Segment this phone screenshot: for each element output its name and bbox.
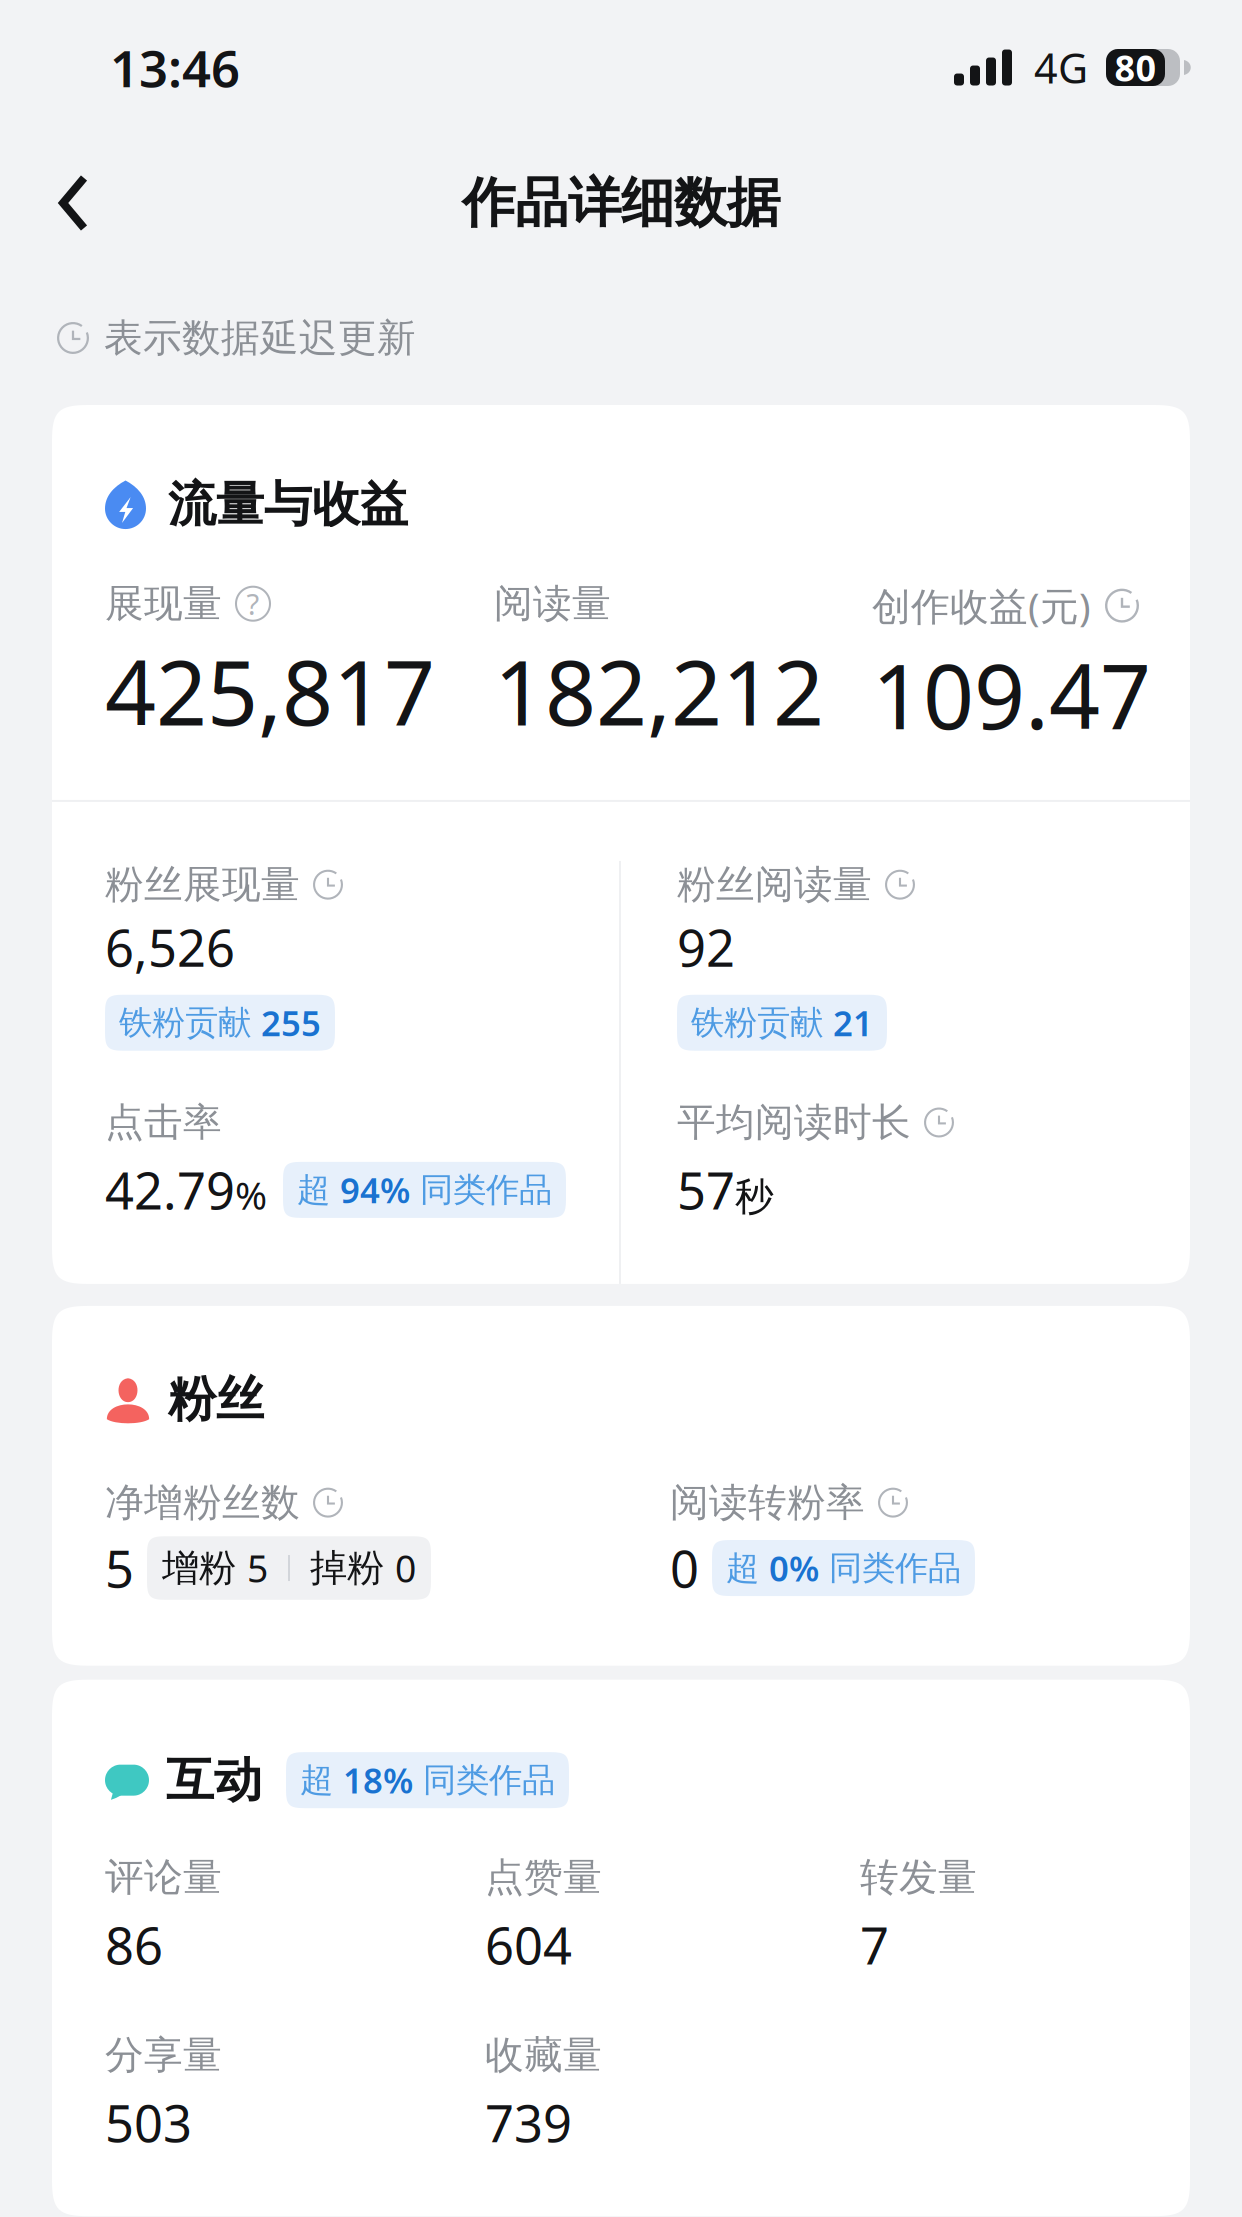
staticText: 创作收益(元) xyxy=(872,580,1091,631)
staticText: 21 xyxy=(833,1000,873,1046)
staticText: 5 xyxy=(247,1543,268,1593)
staticText: 57 xyxy=(677,1156,735,1223)
staticText: 109.47 xyxy=(872,635,1151,754)
staticText: 评论量 xyxy=(105,1854,222,1901)
staticText: 表示数据延迟更新 xyxy=(104,314,416,362)
staticText: 92 xyxy=(677,913,735,981)
staticText: 流量与收益 xyxy=(168,475,408,534)
staticText: 超 xyxy=(300,1760,343,1801)
staticText: % xyxy=(235,1169,267,1220)
staticText: 13:46 xyxy=(110,34,240,101)
staticText: 42.79 xyxy=(105,1156,235,1223)
staticText: 182,212 xyxy=(494,631,824,750)
staticText: 秒 xyxy=(735,1173,774,1220)
staticText: 点赞量 xyxy=(485,1854,602,1901)
staticText: 同类作品 xyxy=(819,1548,961,1588)
staticText: 0% xyxy=(769,1545,819,1591)
staticText: 425,817 xyxy=(105,631,435,750)
staticText: 604 xyxy=(485,1911,572,1978)
staticText: 超 xyxy=(297,1169,340,1210)
staticText: 4G xyxy=(1034,40,1088,95)
staticText: 阅读转粉率 xyxy=(670,1479,865,1526)
staticText: ? xyxy=(246,584,259,623)
staticText: 5 xyxy=(105,1534,134,1602)
staticText: 展现量 xyxy=(105,580,222,627)
staticText: 86 xyxy=(105,1911,163,1978)
staticText: 粉丝展现量 xyxy=(105,861,300,908)
staticText: 503 xyxy=(105,2089,192,2156)
staticText: 收藏量 xyxy=(485,2031,602,2079)
staticText: 点击率 xyxy=(105,1099,222,1146)
button[interactable]: 返回 xyxy=(22,148,126,258)
staticText: 粉丝 xyxy=(168,1370,264,1429)
staticText: 互动 xyxy=(166,1751,262,1810)
staticText: 转发量 xyxy=(860,1854,977,1901)
staticText: 同类作品 xyxy=(413,1760,555,1801)
staticText: 掉粉 xyxy=(310,1545,395,1591)
staticText: 增粉 xyxy=(162,1545,247,1591)
staticText: 铁粉贡献 xyxy=(691,1002,833,1043)
staticText: 0 xyxy=(670,1534,699,1602)
staticText: 同类作品 xyxy=(410,1169,552,1210)
staticText: 80 xyxy=(1114,44,1156,91)
staticText: 94% xyxy=(340,1167,410,1213)
staticText: 作品详细数据 xyxy=(462,170,780,236)
staticText: 分享量 xyxy=(105,2031,222,2079)
staticText: 7 xyxy=(860,1911,889,1978)
staticText: 0 xyxy=(395,1543,416,1593)
staticText: 铁粉贡献 xyxy=(119,1002,261,1043)
staticText: 6,526 xyxy=(105,913,235,981)
staticText: 超 xyxy=(726,1548,769,1588)
staticText: 739 xyxy=(485,2089,572,2156)
staticText: 18% xyxy=(343,1757,413,1803)
staticText: 净增粉丝数 xyxy=(105,1479,300,1526)
staticText: 平均阅读时长 xyxy=(677,1099,911,1146)
staticText: 粉丝阅读量 xyxy=(677,861,872,908)
staticText: 阅读量 xyxy=(494,580,611,627)
staticText: 255 xyxy=(261,1000,321,1046)
